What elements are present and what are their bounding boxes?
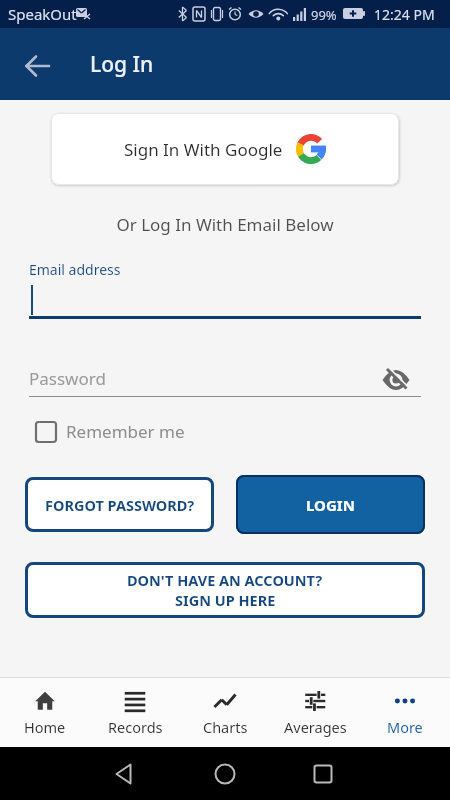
button[interactable]: Charts	[180, 678, 270, 747]
button[interactable]	[382, 366, 410, 394]
staticText: Remember me	[66, 420, 185, 443]
staticText: DON'T HAVE AN ACCOUNT?	[127, 570, 323, 590]
staticText: Sign In With Google	[124, 138, 283, 161]
button[interactable]	[103, 752, 147, 796]
button[interactable]: LOGIN	[236, 475, 425, 534]
staticText: Records	[108, 717, 163, 737]
button[interactable]: FORGOT PASSWORD?	[25, 477, 214, 532]
staticText: LOGIN	[306, 495, 355, 515]
staticText: Email address	[29, 260, 121, 279]
staticText: Charts	[203, 717, 248, 737]
button[interactable]: Remember me	[35, 420, 185, 443]
button[interactable]	[301, 752, 345, 796]
staticText: Averages	[284, 717, 347, 737]
staticText: Log In	[90, 50, 154, 79]
button[interactable]: Home	[0, 678, 90, 747]
button[interactable]: DON'T HAVE AN ACCOUNT?	[25, 562, 425, 618]
button[interactable]: Records	[90, 678, 180, 747]
staticText: More	[387, 717, 423, 737]
staticText: Password	[29, 367, 106, 390]
staticText: 99%	[311, 6, 337, 24]
button[interactable]: Averages	[270, 678, 360, 747]
button[interactable]: More	[360, 678, 450, 747]
staticText: SIGN UP HERE	[175, 590, 276, 610]
staticText: Or Log In With Email Below	[0, 213, 450, 236]
staticText: FORGOT PASSWORD?	[45, 495, 195, 515]
button[interactable]	[16, 48, 60, 84]
button[interactable]	[203, 752, 247, 796]
staticText: 12:24 PM	[374, 5, 435, 24]
staticText: Home	[24, 717, 66, 737]
button[interactable]: Sign In With Google	[51, 113, 399, 185]
staticText: SpeakOut	[8, 4, 77, 24]
